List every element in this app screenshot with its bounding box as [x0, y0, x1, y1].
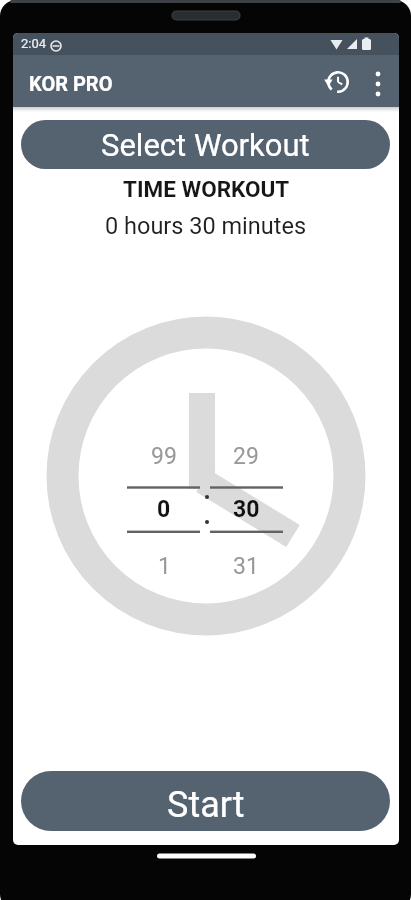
staticText: Select Workout — [101, 127, 310, 163]
staticText: 99 — [151, 443, 177, 470]
staticText: Start — [167, 784, 245, 826]
staticText: 0 — [157, 496, 171, 523]
staticText: 2:04 — [21, 36, 47, 51]
staticText: 0 hours 30 minutes — [105, 212, 307, 240]
staticText: TIME WORKOUT — [123, 176, 290, 202]
staticText: 30 — [233, 496, 260, 523]
button[interactable]: Select Workout — [21, 120, 390, 169]
staticText: KOR PRO — [29, 72, 113, 95]
button[interactable]: Start — [21, 771, 390, 831]
button[interactable] — [362, 61, 394, 107]
button[interactable] — [318, 62, 358, 102]
staticText: 1 — [158, 553, 171, 580]
staticText: 31 — [233, 553, 259, 580]
staticText: 29 — [233, 443, 259, 470]
